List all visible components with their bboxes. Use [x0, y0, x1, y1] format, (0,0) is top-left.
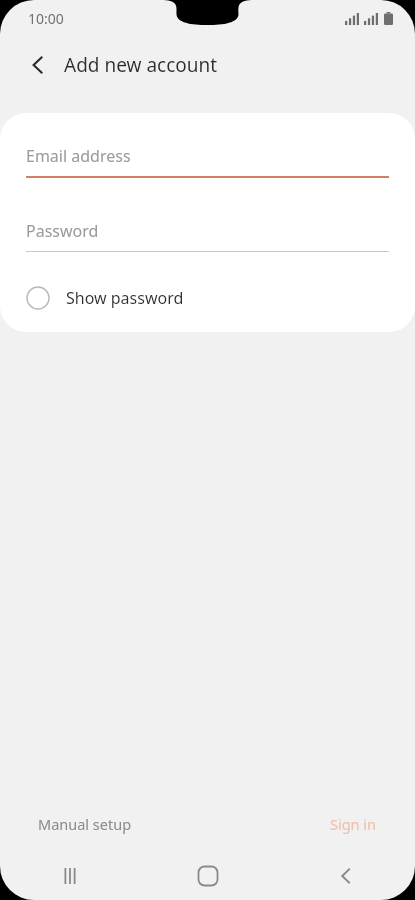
button[interactable]: Back: [277, 852, 415, 900]
button[interactable]: Recent apps: [0, 852, 139, 900]
button[interactable]: Back: [16, 43, 60, 87]
staticText: Manual setup: [38, 814, 132, 834]
staticText: Email address: [26, 145, 131, 167]
staticText: 10:00: [28, 9, 64, 28]
button[interactable]: Sign in: [314, 804, 393, 844]
staticText: Sign in: [330, 814, 377, 834]
button[interactable]: Email address: [26, 145, 389, 178]
button[interactable]: Show password: [0, 278, 415, 318]
staticText: Password: [26, 220, 99, 242]
staticText: Add new account: [64, 52, 218, 78]
staticText: Show password: [66, 287, 184, 309]
button[interactable]: Password: [26, 220, 389, 252]
button[interactable]: Manual setup: [22, 804, 148, 844]
button[interactable]: Home: [139, 852, 277, 900]
